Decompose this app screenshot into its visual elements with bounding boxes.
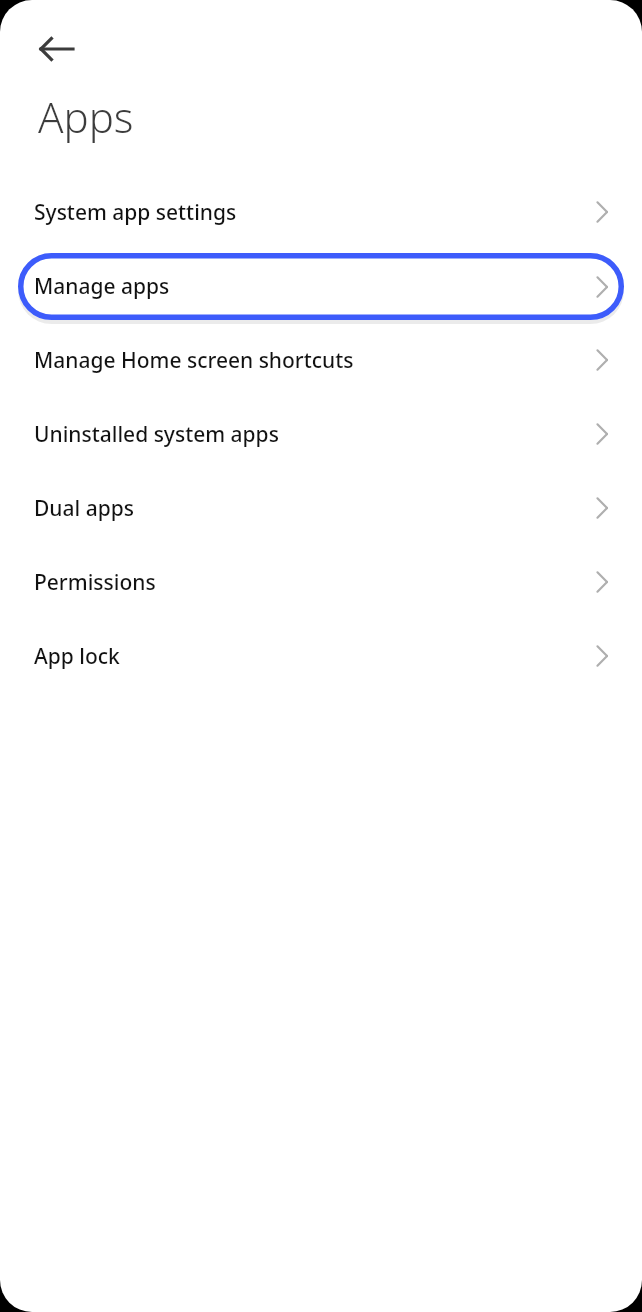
staticText: App lock (34, 642, 596, 671)
staticText: Permissions (34, 568, 596, 597)
staticText: Manage Home screen shortcuts (34, 346, 596, 375)
button[interactable]: Back (30, 22, 84, 76)
button[interactable]: App lock (0, 619, 642, 693)
staticText: System app settings (34, 198, 596, 227)
button[interactable]: System app settings (0, 175, 642, 249)
button[interactable]: Manage apps (18, 253, 624, 320)
button[interactable]: Manage Home screen shortcuts (0, 323, 642, 397)
staticText: Uninstalled system apps (34, 420, 596, 449)
staticText: Manage apps (34, 272, 596, 301)
button[interactable]: Permissions (0, 545, 642, 619)
staticText: Dual apps (34, 494, 596, 523)
button[interactable]: Uninstalled system apps (0, 397, 642, 471)
staticText: Apps (38, 88, 134, 145)
button[interactable]: Dual apps (0, 471, 642, 545)
